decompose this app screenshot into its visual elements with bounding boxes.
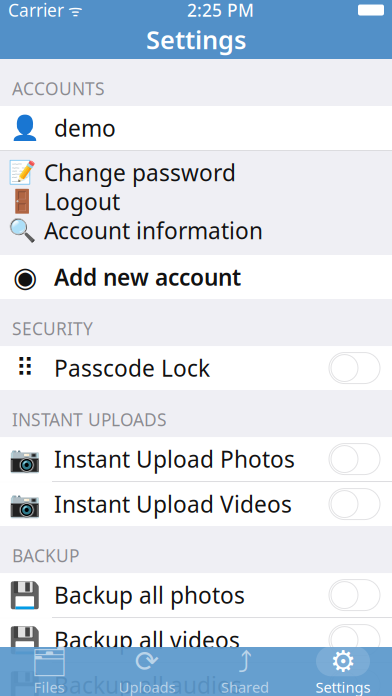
staticText: Backup all audios (54, 670, 242, 696)
staticText: Instant Upload Photos (54, 444, 295, 474)
staticText: Uploads (118, 677, 175, 696)
button[interactable]: Settings (294, 647, 392, 696)
staticText: 💾 (9, 581, 41, 609)
staticText: Carrier (8, 0, 64, 21)
staticText: ⠿ (15, 354, 34, 382)
staticText: SECURITY (12, 317, 93, 340)
button[interactable]: 💾 (0, 573, 392, 617)
button[interactable]: 💾 (0, 618, 392, 662)
staticText: ⤴ (237, 647, 252, 676)
button[interactable]: Shared (196, 647, 294, 696)
button[interactable]: 👤 (0, 106, 392, 150)
staticText: ACCOUNTS (12, 77, 105, 100)
staticText: demo (54, 113, 116, 143)
staticText: ⟳ (134, 645, 159, 678)
staticText: Instant Upload Videos (54, 489, 292, 519)
staticText: ᯤ (64, 0, 83, 21)
staticText: Passcode Lock (54, 353, 210, 383)
button[interactable]: 💾 (0, 663, 392, 696)
staticText: Account information (44, 215, 263, 246)
button[interactable]: 📝 (0, 158, 392, 187)
button[interactable]: 🔍 (0, 216, 392, 245)
staticText: Logout (44, 186, 120, 217)
staticText: BACKUP (12, 544, 79, 567)
staticText: 👤 (10, 114, 40, 142)
button[interactable]: Uploads (98, 647, 196, 696)
button[interactable]: 🚪 (0, 187, 392, 216)
staticText: 🚪 (8, 189, 36, 214)
staticText: Files (33, 677, 64, 696)
button[interactable]: ◉ (0, 255, 392, 299)
staticText: Backup all photos (54, 580, 245, 610)
button[interactable]: Files (0, 647, 98, 696)
staticText: Change password (44, 157, 236, 188)
staticText: Backup all videos (54, 625, 240, 655)
staticText: Settings (146, 23, 246, 56)
button[interactable]: 📷 (0, 482, 392, 526)
staticText: 💾 (9, 626, 41, 654)
staticText: 🗂 (30, 644, 67, 678)
staticText: ⚙ (330, 645, 356, 678)
button[interactable]: 📷 (0, 437, 392, 481)
staticText: Settings (315, 677, 370, 696)
staticText: Add new account (54, 262, 241, 292)
staticText: 📝 (8, 160, 36, 185)
staticText: 📷 (9, 445, 41, 473)
staticText: 📷 (9, 490, 41, 518)
staticText: ◉ (13, 261, 37, 293)
staticText: 2:25 PM (187, 0, 254, 21)
staticText: 🔍 (8, 218, 36, 243)
button[interactable]: ⠿ (0, 346, 392, 390)
staticText: Shared (221, 677, 269, 696)
staticText: 💾 (9, 671, 41, 696)
staticText: INSTANT UPLOADS (12, 408, 167, 431)
